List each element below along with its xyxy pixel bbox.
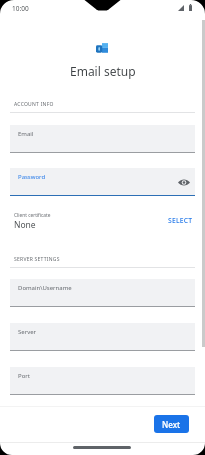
button[interactable]: Domain\Username [10,279,195,307]
staticText: SERVER SETTINGS [14,256,60,263]
staticText: Password [18,173,46,181]
button[interactable]: Next [154,415,189,433]
staticText: Email [18,130,34,138]
button[interactable]: Show password [177,178,190,187]
staticText: Port [18,372,30,380]
staticText: Client certificate [14,212,51,219]
staticText: None [14,219,36,231]
button[interactable]: Email [10,125,195,153]
staticText: Domain\Username [18,284,72,292]
staticText: 10:00 [12,4,29,13]
staticText: Next [162,419,181,430]
button[interactable]: SELECT [165,213,196,228]
button[interactable]: Password [10,168,195,196]
staticText: SELECT [168,216,193,225]
staticText: Server [18,328,37,336]
staticText: ACCOUNT INFO [14,101,54,108]
button[interactable]: Client certificate [0,205,205,238]
staticText: Email setup [70,63,136,79]
button[interactable]: Port [10,367,195,395]
button[interactable]: Server [10,323,195,351]
